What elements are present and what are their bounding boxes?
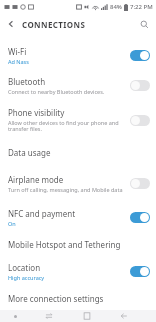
staticText: Mobile Hotspot and Tethering [8, 239, 121, 250]
button[interactable]: Toggle off [130, 115, 150, 126]
staticText: Data usage [8, 147, 51, 158]
staticText: Airplane mode [8, 174, 64, 185]
button[interactable]: NFC and payment [0, 202, 156, 232]
button[interactable]: Phone visibility [0, 100, 156, 140]
button[interactable]: Toggle off [130, 80, 150, 91]
staticText: CONNECTIONS [22, 19, 86, 30]
button[interactable]: Back [2, 15, 20, 33]
staticText: Phone visibility [8, 107, 65, 118]
button[interactable]: Mobile Hotspot and Tethering [0, 232, 156, 256]
button[interactable]: Bluetooth [0, 70, 156, 100]
staticText: Allow other devices to find your phone a… [8, 119, 124, 133]
staticText: 7:22 PM [130, 3, 153, 11]
button[interactable]: Location [0, 256, 156, 286]
button[interactable]: More connection settings [0, 286, 156, 310]
button[interactable]: Data usage [0, 140, 156, 164]
staticText: Ad Nass [8, 58, 29, 65]
button[interactable]: Airplane mode [0, 164, 156, 202]
staticText: More connection settings [8, 293, 104, 304]
staticText: On [8, 220, 16, 227]
button[interactable]: Toggle on [130, 50, 150, 61]
staticText: Wi-Fi [8, 46, 27, 57]
button[interactable]: Toggle on [130, 266, 150, 277]
button[interactable]: Recents [30, 310, 68, 322]
staticText: 84% [110, 3, 122, 11]
button[interactable]: Home [68, 310, 105, 322]
button[interactable]: Toggle on [130, 212, 150, 223]
button[interactable]: Back [105, 310, 142, 322]
button[interactable]: Search [135, 15, 153, 33]
staticText: Turn off calling, messaging, and Mobile … [8, 186, 123, 193]
button[interactable]: Toggle off [130, 178, 150, 189]
staticText: High accuracy [8, 274, 45, 281]
button[interactable]: Wi-Fi [0, 40, 156, 70]
staticText: NFC and payment [8, 208, 76, 219]
staticText: Location [8, 262, 41, 273]
staticText: Connect to nearby Bluetooth devices. [8, 88, 105, 95]
staticText: Bluetooth [8, 76, 46, 87]
